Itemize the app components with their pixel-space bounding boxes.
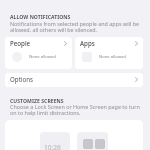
staticText: ALLOW NOTIFICATIONS	[10, 14, 71, 21]
button[interactable]: People	[5, 37, 72, 69]
staticText: People	[10, 39, 31, 47]
staticText: CUSTOMIZE SCREENS	[10, 98, 64, 105]
button[interactable]: Options	[5, 73, 143, 87]
staticText: Apps	[80, 39, 95, 47]
staticText: Notifications from selected people and a…	[10, 20, 148, 34]
button[interactable]: Lock Screen preview	[40, 132, 70, 150]
button[interactable]: Home Screen preview	[77, 132, 108, 150]
staticText: None allowed	[29, 54, 56, 60]
staticText: 10:26	[44, 143, 61, 150]
staticText: Options	[10, 75, 33, 83]
button[interactable]: Apps	[75, 37, 143, 69]
staticText: Choose a Lock Screen or Home Screen page…	[10, 103, 148, 117]
staticText: None allowed	[99, 54, 126, 60]
